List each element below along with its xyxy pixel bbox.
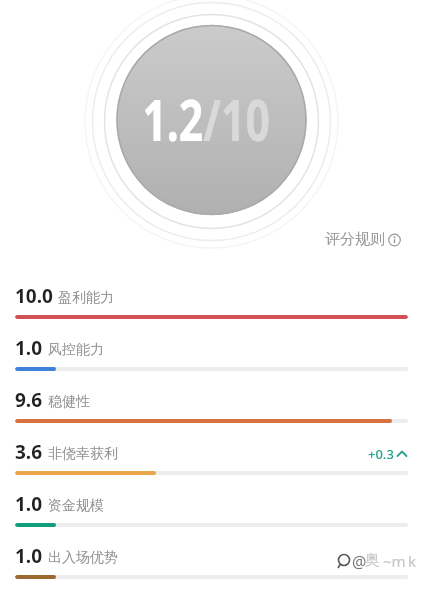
- staticText: 9.6: [15, 387, 43, 413]
- button[interactable]: 1.0: [0, 543, 423, 593]
- staticText: 非侥幸获利: [48, 445, 118, 463]
- staticText: 奥: [365, 551, 380, 570]
- staticText: 10.0: [15, 283, 53, 309]
- staticText: k: [408, 551, 417, 571]
- staticText: 评分规则: [325, 230, 385, 249]
- staticText: 盈利能力: [58, 289, 114, 307]
- staticText: 3.6: [15, 439, 43, 465]
- button[interactable]: 1.0: [0, 335, 423, 387]
- staticText: 出入场优势: [48, 549, 118, 567]
- staticText: +0.3: [368, 445, 394, 463]
- staticText: 风控能力: [48, 341, 104, 359]
- button[interactable]: 评分规则: [325, 230, 402, 249]
- staticText: ~m: [383, 551, 406, 571]
- staticText: 资金规模: [48, 497, 104, 515]
- staticText: @: [352, 551, 367, 573]
- staticText: 稳健性: [48, 393, 90, 411]
- staticText: 1.0: [15, 491, 43, 517]
- button[interactable]: 1.0: [0, 491, 423, 543]
- staticText: 1.0: [15, 543, 43, 569]
- staticText: 1.0: [15, 335, 43, 361]
- staticText: 1.2/10: [142, 80, 271, 158]
- button[interactable]: 3.6: [0, 439, 423, 491]
- button[interactable]: 10.0: [0, 283, 423, 335]
- button[interactable]: 9.6: [0, 387, 423, 439]
